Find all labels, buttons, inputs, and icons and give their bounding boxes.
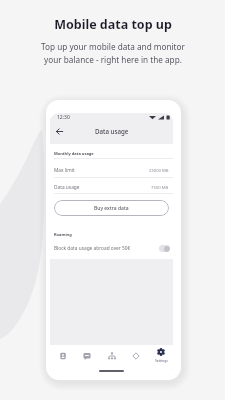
button[interactable]: Buy extra data xyxy=(54,200,169,216)
staticText: Buy extra data xyxy=(94,205,129,212)
staticText: Block data usage abroad over 50€ xyxy=(54,245,131,252)
staticText: 25000 MB xyxy=(149,168,169,174)
staticText: 7500 MB xyxy=(151,185,169,191)
staticText: Max limit xyxy=(54,167,75,174)
button[interactable]: Shop xyxy=(51,352,75,360)
staticText: Roaming xyxy=(54,232,72,237)
staticText: Top up your mobile data and monitor your… xyxy=(41,41,185,66)
button[interactable]: Block data usage abroad over 50€ xyxy=(54,243,170,254)
staticText: Monthly data usage xyxy=(54,151,94,156)
staticText: Data usage xyxy=(95,127,129,135)
button[interactable]: Network xyxy=(100,352,124,360)
button[interactable]: Back xyxy=(53,125,65,137)
staticText: Data usage xyxy=(54,184,80,191)
button[interactable]: Messages xyxy=(75,352,99,360)
staticText: 12:30 xyxy=(57,114,70,121)
button[interactable]: Settings xyxy=(149,348,173,363)
staticText: Settings xyxy=(155,358,168,363)
staticText: Mobile data top up xyxy=(54,16,172,33)
button[interactable]: Notifications xyxy=(124,352,148,360)
